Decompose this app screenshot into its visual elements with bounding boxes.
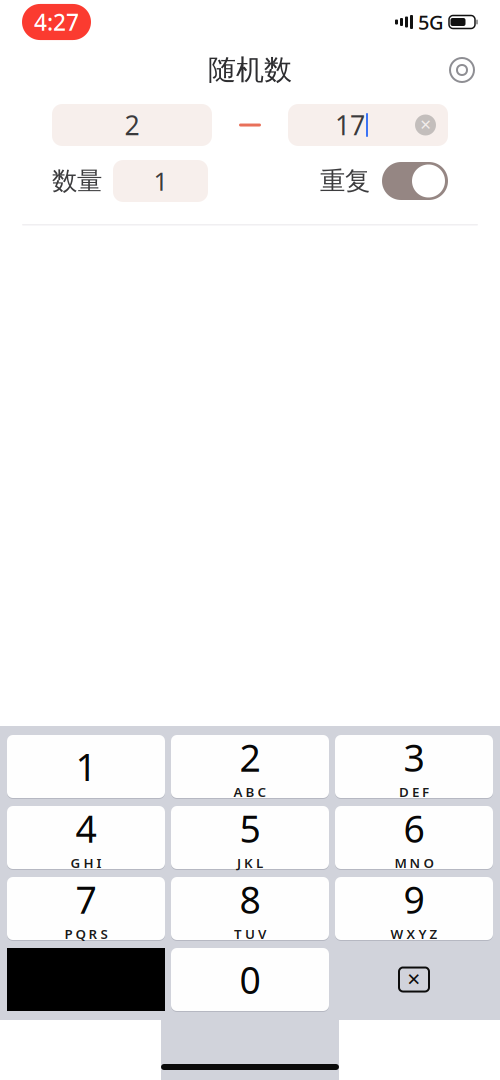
staticText: J K L [237, 854, 263, 872]
button[interactable]: 17 [288, 104, 448, 146]
staticText: W X Y Z [390, 925, 437, 943]
button[interactable]: Settings [442, 50, 482, 90]
staticText: 5G [418, 9, 444, 35]
staticText: 2 [124, 107, 139, 143]
button[interactable]: 3 [335, 734, 493, 799]
staticText: 1 [153, 164, 167, 198]
button[interactable]: Delete [335, 948, 493, 1011]
staticText: 随机数 [208, 53, 292, 87]
staticText: A B C [233, 783, 266, 801]
staticText: 4 [75, 803, 96, 853]
button[interactable]: 2 [52, 104, 212, 146]
staticText: 3 [403, 732, 424, 782]
staticText: 0 [239, 955, 260, 1004]
button[interactable]: 4 [7, 805, 165, 870]
button[interactable] [370, 162, 448, 200]
staticText: T U V [234, 925, 266, 943]
button[interactable]: 6 [335, 805, 493, 870]
button[interactable]: 2 [171, 734, 329, 799]
staticText: M N O [394, 854, 433, 872]
staticText: ✕ [406, 970, 421, 989]
staticText: 6 [403, 803, 424, 853]
staticText: 数量 [52, 165, 102, 196]
staticText: 17 [335, 107, 365, 143]
button[interactable]: 1 [7, 734, 165, 799]
staticText: 4:27 [34, 7, 79, 37]
staticText: 2 [239, 732, 260, 782]
staticText: 8 [239, 874, 260, 924]
staticText: 9 [403, 874, 424, 924]
staticText: ✕ [419, 117, 431, 133]
staticText: D E F [399, 783, 429, 801]
staticText: G H I [70, 854, 101, 872]
staticText: P Q R S [64, 925, 107, 943]
button[interactable]: 0 [171, 947, 329, 1012]
button[interactable]: 9 [335, 876, 493, 941]
staticText: 1 [75, 742, 96, 791]
button[interactable]: 7 [7, 876, 165, 941]
staticText: 7 [75, 874, 96, 924]
button[interactable]: 8 [171, 876, 329, 941]
staticText: 重复 [320, 165, 370, 196]
staticText: 5 [239, 803, 260, 853]
button[interactable]: 5 [171, 805, 329, 870]
button[interactable]: 1 [113, 160, 208, 202]
